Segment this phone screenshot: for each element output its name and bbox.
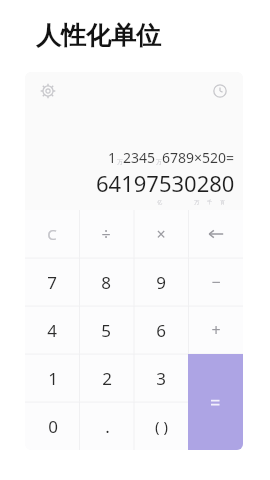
button[interactable]: 7 (25, 258, 79, 306)
staticText: ( ) (155, 416, 168, 436)
staticText: 亿 (157, 199, 162, 205)
staticText: 9 (156, 271, 166, 294)
staticText: 7 (47, 271, 57, 294)
staticText: 万 (117, 158, 123, 166)
button[interactable]: 0 (25, 402, 80, 450)
button[interactable]: Backspace (188, 210, 243, 258)
button[interactable]: ÷ (79, 210, 133, 258)
button[interactable]: 8 (79, 258, 133, 306)
staticText: + (211, 319, 221, 341)
button[interactable]: . (80, 402, 134, 450)
staticText: 千 (207, 199, 212, 205)
button[interactable]: 6 (133, 306, 188, 354)
button[interactable]: C (25, 210, 79, 258)
staticText: 6789×520= (162, 148, 235, 167)
button[interactable]: 2 (80, 354, 134, 402)
staticText: − (211, 271, 221, 293)
staticText: 8 (101, 271, 111, 294)
staticText: 64197530280 (96, 168, 235, 198)
button[interactable]: + (188, 306, 243, 354)
button[interactable]: = (188, 354, 243, 450)
staticText: ÷ (101, 223, 111, 245)
staticText: 万 (156, 158, 162, 166)
button[interactable]: Settings (37, 80, 59, 102)
staticText: 6 (156, 319, 166, 342)
staticText: 1 (108, 148, 117, 167)
staticText: 人性化单位 (36, 20, 161, 51)
button[interactable]: × (133, 210, 188, 258)
staticText: 3 (156, 367, 166, 390)
staticText: × (156, 223, 166, 245)
staticText: 5 (101, 319, 111, 342)
button[interactable]: History (209, 80, 231, 102)
button[interactable]: ( ) (134, 402, 188, 450)
button[interactable]: 3 (134, 354, 188, 402)
staticText: 4 (47, 319, 57, 342)
staticText: 1 (48, 367, 58, 390)
button[interactable]: 1 (25, 354, 80, 402)
button[interactable]: 9 (133, 258, 188, 306)
staticText: = (210, 390, 221, 415)
staticText: 2 (102, 367, 112, 390)
button[interactable]: 5 (79, 306, 133, 354)
button[interactable]: − (188, 258, 243, 306)
staticText: 2345 (123, 148, 156, 167)
button[interactable]: 4 (25, 306, 79, 354)
staticText: 万 (194, 199, 199, 205)
staticText: 百 (220, 199, 225, 205)
staticText: . (105, 415, 110, 438)
staticText: 0 (48, 415, 58, 438)
staticText: C (47, 224, 57, 244)
